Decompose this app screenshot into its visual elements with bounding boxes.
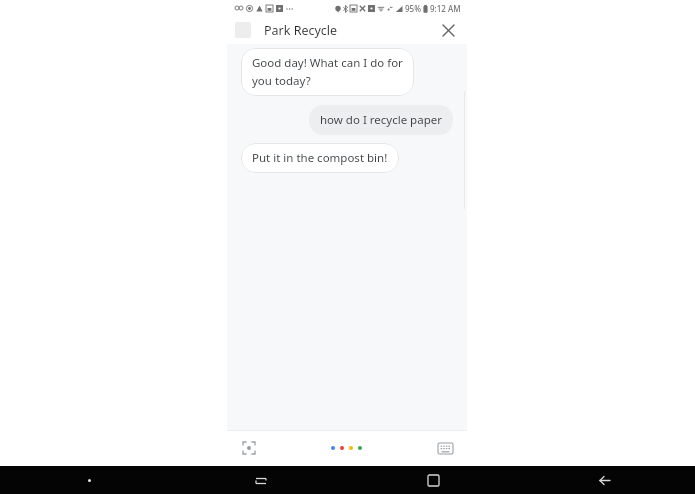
staticText: 9:12 AM — [430, 3, 461, 14]
button[interactable]: Put it in the compost bin! — [241, 143, 399, 173]
staticText: you today? — [252, 73, 311, 89]
button[interactable]: Keyboard — [433, 436, 457, 460]
staticText: how do I recycle paper — [320, 112, 442, 128]
button[interactable]: Menu dot — [4, 466, 175, 494]
staticText: Put it in the compost bin! — [252, 150, 388, 166]
button[interactable]: Good day! What can I do for — [241, 48, 414, 96]
staticText: 95% — [405, 3, 421, 14]
button[interactable]: Back — [519, 466, 691, 494]
staticText: Park Recycle — [264, 22, 338, 39]
staticText: Good day! What can I do for — [252, 55, 403, 71]
button[interactable]: Close — [437, 19, 459, 41]
button[interactable]: Home — [347, 466, 519, 494]
button[interactable]: Google Lens — [237, 436, 261, 460]
button[interactable]: Assistant — [327, 442, 366, 454]
button[interactable]: how do I recycle paper — [309, 105, 453, 135]
button[interactable]: Recents — [175, 466, 347, 494]
